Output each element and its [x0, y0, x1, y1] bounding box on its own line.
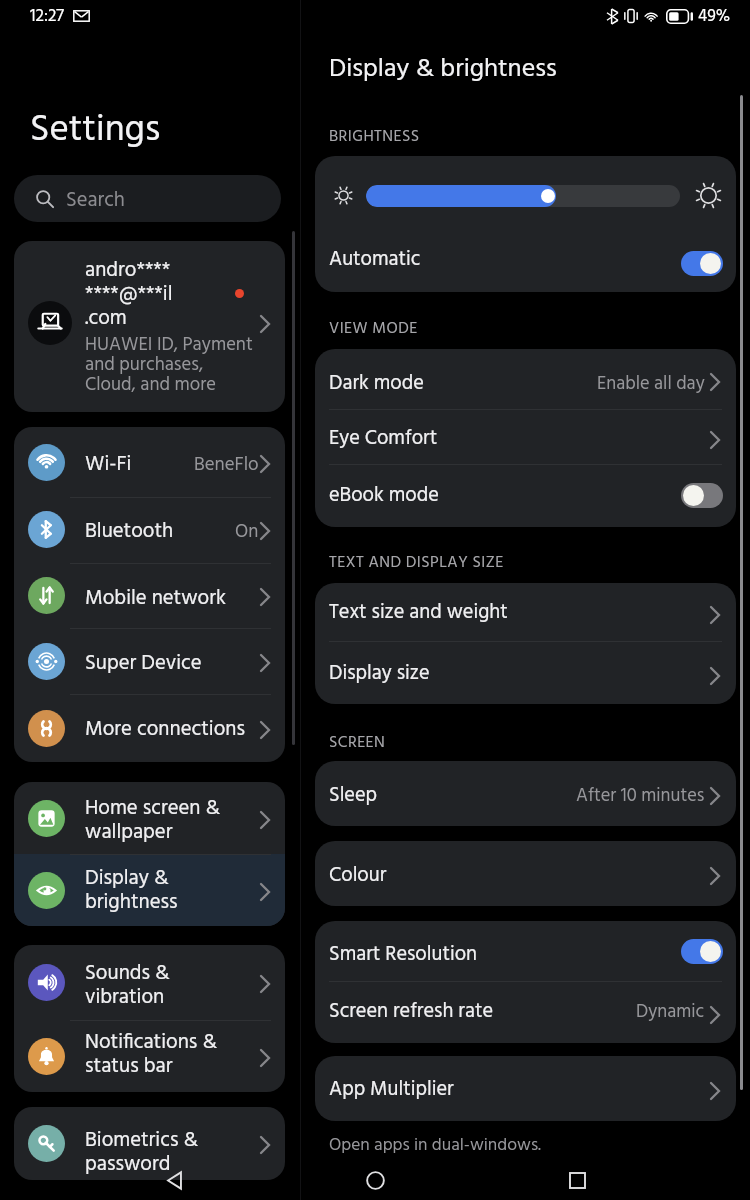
button[interactable]: Colour [315, 841, 736, 906]
staticText: Smart Resolution [329, 939, 478, 972]
button[interactable]: Biometrics & password [14, 1107, 285, 1179]
staticText: HUAWEI ID, Payment and purchases, Cloud,… [85, 330, 255, 401]
button[interactable]: Brightness [366, 185, 680, 207]
button[interactable]: Search [14, 175, 281, 222]
staticText: Bluetooth [85, 515, 260, 548]
staticText: Automatic [329, 244, 421, 277]
button[interactable]: Wi-Fi [14, 427, 285, 497]
staticText: Biometrics & password [85, 1124, 260, 1180]
button[interactable]: eBook mode [315, 465, 736, 526]
staticText: eBook mode [329, 480, 439, 513]
staticText: TEXT AND DISPLAY SIZE [329, 550, 504, 576]
staticText: Screen refresh rate [329, 996, 493, 1029]
staticText: Display & brightness [85, 862, 260, 919]
staticText: Dynamic [636, 998, 705, 1027]
button[interactable]: More connections [14, 694, 285, 762]
button[interactable]: Back [146, 1160, 202, 1200]
button[interactable]: Display & brightness [14, 854, 285, 926]
staticText: Open apps in dual-windows. [329, 1132, 542, 1160]
staticText: Eye Comfort [329, 423, 438, 456]
button[interactable]: Mobile network [14, 563, 285, 629]
staticText: Display & brightness [329, 49, 557, 91]
staticText: BeneFlo [194, 450, 259, 480]
staticText: Colour [329, 860, 387, 893]
staticText: Wi-Fi [85, 448, 260, 481]
button[interactable]: Automatic [681, 251, 723, 276]
staticText: Sleep [329, 780, 378, 813]
staticText: VIEW MODE [329, 316, 418, 342]
staticText: Notifications & status bar [85, 1026, 260, 1083]
staticText: Home screen & wallpaper [85, 792, 260, 849]
staticText: Enable all day [597, 370, 705, 399]
button[interactable]: Smart Resolution [315, 921, 736, 982]
button[interactable]: Dark mode [315, 349, 736, 410]
staticText: andro**** ****@***il .com [85, 254, 245, 335]
button[interactable]: Recents [549, 1160, 605, 1200]
staticText: After 10 minutes [576, 782, 705, 811]
staticText: SCREEN [329, 730, 386, 756]
button[interactable]: Smart Resolution [681, 939, 723, 964]
staticText: App Multiplier [329, 1074, 454, 1107]
staticText: Dark mode [329, 368, 424, 401]
button[interactable]: Sleep [315, 761, 736, 826]
button[interactable]: Automatic [315, 235, 736, 292]
staticText: Mobile network [85, 582, 260, 615]
staticText: Search [66, 184, 125, 217]
button[interactable]: eBook mode [681, 483, 723, 508]
staticText: Text size and weight [329, 597, 508, 630]
button[interactable]: Bluetooth [14, 497, 285, 563]
staticText: Super Device [85, 647, 260, 680]
button[interactable]: andro**** ****@***il .com [14, 241, 285, 412]
button[interactable]: Text size and weight [315, 583, 736, 641]
button[interactable]: Super Device [14, 628, 285, 694]
staticText: Settings [30, 101, 161, 160]
button[interactable]: Eye Comfort [315, 410, 736, 464]
button[interactable]: Sounds & vibration [14, 945, 285, 1020]
button[interactable]: Notifications & status bar [14, 1020, 285, 1092]
button[interactable]: Screen refresh rate [315, 982, 736, 1042]
button[interactable]: App Multiplier [315, 1056, 736, 1121]
staticText: Display size [329, 658, 430, 691]
staticText: Sounds & vibration [85, 957, 260, 1014]
staticText: On [235, 517, 259, 547]
staticText: More connections [85, 713, 260, 746]
button[interactable]: Home [347, 1160, 403, 1200]
staticText: BRIGHTNESS [329, 124, 420, 150]
staticText: 49% [698, 3, 731, 30]
staticText: 12:27 [30, 3, 64, 30]
button[interactable]: Home screen & wallpaper [14, 782, 285, 854]
button[interactable]: Display size [315, 642, 736, 704]
